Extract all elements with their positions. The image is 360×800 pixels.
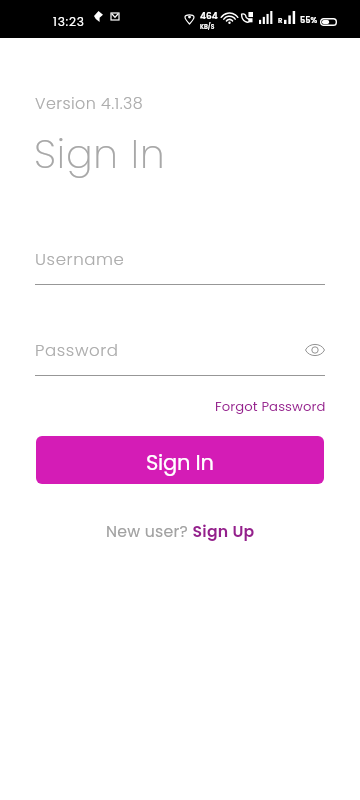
- staticText: Sign In: [146, 448, 214, 477]
- staticText: Username: [35, 248, 125, 271]
- staticText: KB/S: [200, 23, 215, 31]
- staticText: R: [278, 16, 283, 26]
- staticText: Version 4.1.38: [35, 92, 144, 114]
- button[interactable]: Forgot Password: [215, 397, 326, 415]
- staticText: 55%: [300, 14, 318, 25]
- staticText: 13:23: [53, 13, 85, 30]
- button[interactable]: Show password: [303, 338, 327, 362]
- staticText: Forgot Password: [215, 397, 326, 415]
- staticText: 464: [200, 10, 218, 23]
- button[interactable]: New user? Sign Up: [104, 521, 257, 543]
- button[interactable]: Sign In: [36, 436, 324, 484]
- staticText: New user? Sign Up: [106, 521, 255, 543]
- staticText: Sign In: [34, 127, 166, 182]
- staticText: Password: [35, 339, 119, 362]
